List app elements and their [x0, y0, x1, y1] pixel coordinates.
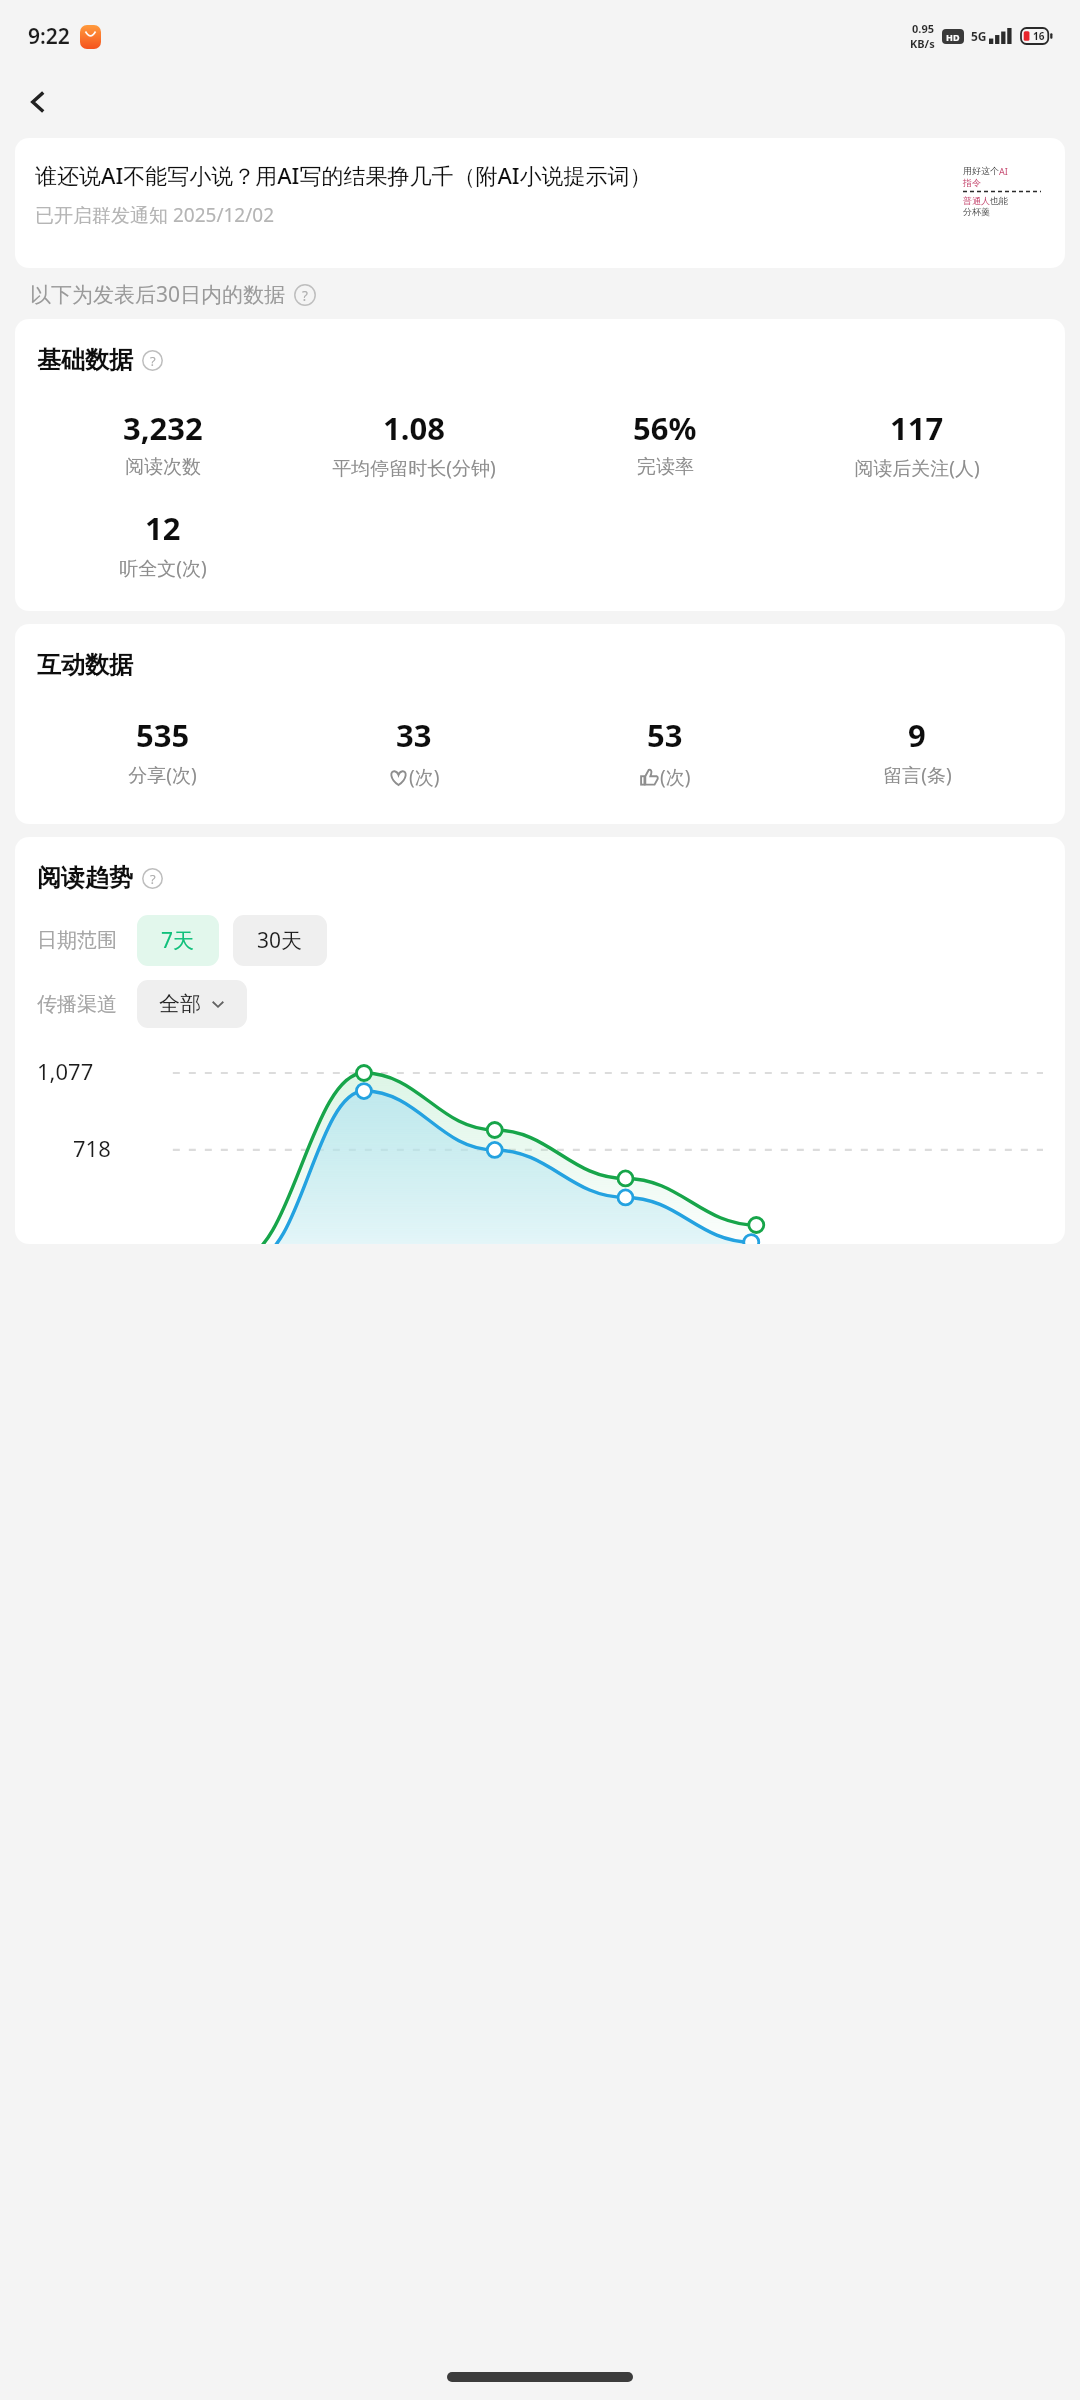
- staticText: 56%: [633, 407, 697, 449]
- staticText: 也能: [990, 195, 1008, 206]
- staticText: 留言(条): [883, 762, 952, 788]
- button[interactable]: 56%: [539, 407, 791, 479]
- staticText: 谁还说AI不能写小说？用AI写的结果挣几千（附AI小说提示词）: [35, 160, 652, 190]
- staticText: 阅读趋势: [37, 863, 133, 893]
- staticText: (次): [409, 764, 440, 790]
- staticText: 117: [890, 407, 944, 449]
- staticText: 用好这个: [963, 165, 999, 176]
- staticText: 以下为发表后30日内的数据: [30, 280, 286, 309]
- staticText: HD: [946, 31, 960, 43]
- staticText: ?: [302, 286, 308, 305]
- button[interactable]: 9: [791, 714, 1043, 788]
- staticText: 日期范围: [37, 928, 117, 953]
- button[interactable]: 117: [791, 407, 1043, 481]
- button[interactable]: 30天: [233, 915, 327, 966]
- staticText: AI: [999, 165, 1008, 177]
- staticText: 7天: [161, 926, 195, 955]
- staticText: 0.95: [912, 21, 934, 36]
- staticText: 16: [1033, 29, 1045, 43]
- button[interactable]: 535: [37, 714, 288, 788]
- button[interactable]: Back: [14, 78, 62, 126]
- staticText: 阅读次数: [125, 455, 201, 479]
- staticText: ?: [150, 352, 156, 370]
- staticText: 12: [145, 507, 181, 549]
- button[interactable]: Help: [142, 350, 163, 371]
- staticText: 535: [136, 714, 190, 756]
- button[interactable]: 全部: [137, 980, 247, 1028]
- staticText: 指令: [963, 177, 981, 188]
- staticText: 分杯羹: [963, 206, 990, 217]
- staticText: ?: [150, 870, 156, 888]
- button[interactable]: 谁还说AI不能写小说？用AI写的结果挣几千（附AI小说提示词）: [15, 138, 1065, 268]
- staticText: 互动数据: [37, 650, 133, 680]
- button[interactable]: 53: [539, 714, 791, 790]
- button[interactable]: Help: [294, 284, 316, 306]
- button[interactable]: 33: [288, 714, 539, 790]
- staticText: 5G: [971, 28, 987, 44]
- staticText: 9:22: [28, 22, 70, 51]
- staticText: 分享(次): [128, 762, 197, 788]
- staticText: 1,077: [37, 1056, 94, 1086]
- staticText: 基础数据: [37, 345, 133, 375]
- staticText: 718: [73, 1133, 111, 1163]
- button[interactable]: 1.08: [288, 407, 539, 481]
- staticText: 已开启群发通知 2025/12/02: [35, 202, 275, 228]
- staticText: 传播渠道: [37, 992, 117, 1017]
- staticText: 阅读后关注(人): [854, 455, 980, 481]
- button[interactable]: 3,232: [37, 407, 288, 479]
- staticText: (次): [660, 764, 691, 790]
- staticText: KB/s: [910, 36, 935, 51]
- staticText: 听全文(次): [119, 555, 207, 581]
- button[interactable]: 7天: [137, 915, 219, 966]
- staticText: 普通人: [963, 195, 990, 206]
- staticText: 完读率: [637, 455, 694, 479]
- staticText: 33: [396, 714, 432, 756]
- staticText: 平均停留时长(分钟): [332, 455, 496, 481]
- staticText: 9: [908, 714, 926, 756]
- staticText: 全部: [159, 991, 201, 1017]
- button[interactable]: Help: [142, 868, 163, 889]
- staticText: 53: [647, 714, 683, 756]
- staticText: 1.08: [383, 407, 445, 449]
- button[interactable]: 12: [37, 507, 288, 581]
- staticText: 3,232: [123, 407, 203, 449]
- staticText: 30天: [257, 926, 303, 955]
